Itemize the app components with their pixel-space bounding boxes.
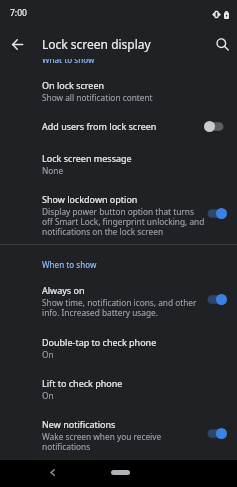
button[interactable]: Toggle off bbox=[202, 118, 229, 134]
staticText: Show time, notification icons, and other… bbox=[42, 297, 206, 318]
button[interactable]: Toggle on bbox=[202, 425, 229, 441]
staticText: On lock screen bbox=[42, 79, 105, 91]
staticText: Always on bbox=[42, 284, 85, 296]
button[interactable]: Lock screen message bbox=[0, 136, 237, 176]
button[interactable]: Add users from lock screen bbox=[0, 103, 237, 136]
button[interactable]: Double-tap to check phone bbox=[0, 318, 237, 360]
button[interactable]: Show lockdown option bbox=[0, 176, 237, 237]
button[interactable]: Back bbox=[44, 464, 60, 480]
staticText: Wake screen when you receive notificatio… bbox=[42, 431, 206, 452]
staticText: Display power button option that turns o… bbox=[42, 206, 206, 237]
button[interactable]: Toggle on bbox=[202, 291, 229, 307]
button[interactable]: Toggle on bbox=[202, 205, 229, 221]
staticText: When to show bbox=[42, 259, 97, 270]
staticText: On bbox=[42, 349, 54, 360]
staticText: Show all notification content bbox=[42, 92, 153, 103]
staticText: Add users from lock screen bbox=[42, 120, 157, 132]
staticText: 7:00 bbox=[10, 7, 27, 19]
button[interactable]: Back bbox=[0, 26, 34, 59]
staticText: None bbox=[42, 165, 64, 176]
staticText: Show lockdown option bbox=[42, 193, 138, 205]
button[interactable]: Home bbox=[111, 470, 130, 475]
button[interactable]: When to show bbox=[0, 245, 237, 270]
staticText: New notifications bbox=[42, 418, 116, 430]
staticText: Lock screen display bbox=[42, 36, 151, 52]
button[interactable]: Search bbox=[207, 26, 237, 59]
staticText: Double-tap to check phone bbox=[42, 336, 157, 348]
staticText: On bbox=[42, 390, 54, 401]
staticText: Lift to check phone bbox=[42, 377, 123, 389]
button[interactable]: New notifications bbox=[0, 401, 237, 452]
staticText: What to show bbox=[42, 54, 95, 65]
button[interactable]: Always on bbox=[0, 270, 237, 318]
button[interactable]: Lift to check phone bbox=[0, 360, 237, 401]
button[interactable]: On lock screen bbox=[0, 65, 237, 103]
staticText: Lock screen message bbox=[42, 152, 132, 164]
